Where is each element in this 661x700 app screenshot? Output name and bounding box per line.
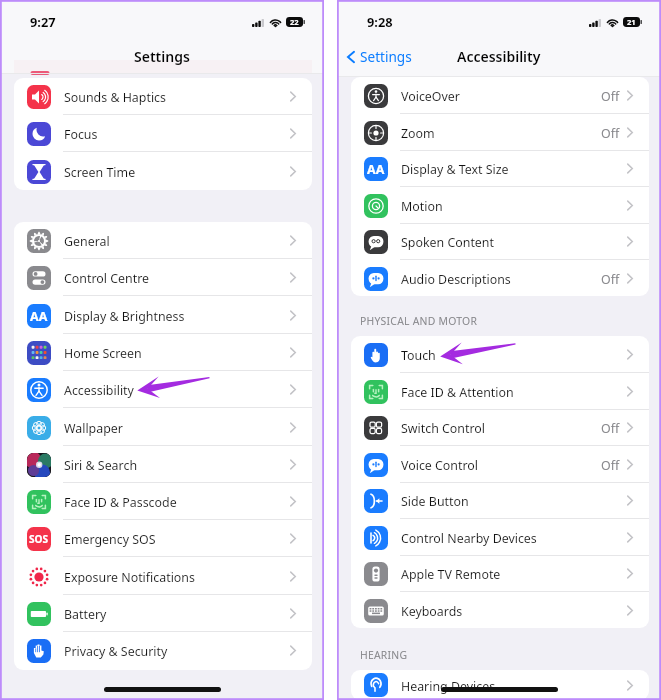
staticText: Focus (64, 126, 98, 143)
button[interactable]: General (14, 222, 312, 259)
staticText: Siri & Search (64, 457, 138, 474)
staticText: VoiceOver (401, 88, 460, 105)
staticText: Home Screen (64, 345, 142, 362)
staticText: Battery (64, 606, 107, 623)
button[interactable]: Sounds & Haptics (14, 78, 312, 115)
other: Back (347, 50, 355, 64)
staticText: Switch Control (401, 420, 486, 437)
button[interactable]: Hearing Devices (351, 670, 649, 700)
staticText: HEARING (360, 648, 408, 662)
staticText: PHYSICAL AND MOTOR (360, 314, 478, 328)
staticText: Side Button (401, 493, 469, 510)
staticText: 9:27 (30, 13, 56, 30)
button[interactable]: Zoom (351, 114, 649, 151)
staticText: Off (601, 271, 620, 288)
button[interactable]: Face ID & Attention (351, 373, 649, 410)
button[interactable]: Switch Control (351, 409, 649, 446)
staticText: Keyboards (401, 603, 463, 620)
button[interactable]: Siri & Search (14, 446, 312, 483)
button[interactable]: Side Button (351, 482, 649, 519)
staticText: Off (601, 457, 620, 474)
staticText: Settings (134, 47, 190, 66)
button[interactable]: Motion (351, 187, 649, 224)
staticText: Touch (401, 347, 436, 364)
staticText: Off (601, 88, 620, 105)
staticText: Wallpaper (64, 420, 123, 437)
staticText: Control Centre (64, 270, 150, 287)
staticText: Face ID & Attention (401, 384, 514, 401)
button[interactable]: AA (351, 150, 649, 187)
button[interactable]: VoiceOver (351, 77, 649, 114)
staticText: 21 (627, 17, 636, 27)
staticText: Apple TV Remote (401, 566, 501, 583)
staticText: Motion (401, 198, 443, 215)
button[interactable]: Focus (14, 115, 312, 152)
staticText: Face ID & Passcode (64, 494, 177, 511)
staticText: Screen Time (64, 164, 136, 181)
staticText: Display & Text Size (401, 161, 509, 178)
staticText: Voice Control (401, 457, 479, 474)
staticText: Privacy & Security (64, 643, 168, 660)
button[interactable]: Privacy & Security (14, 632, 312, 669)
staticText: Accessibility (64, 382, 134, 399)
staticText: Audio Descriptions (401, 271, 511, 288)
staticText: Off (601, 420, 620, 437)
staticText: 9:28 (367, 13, 393, 30)
staticText: AA (367, 161, 385, 178)
staticText: Display & Brightness (64, 308, 185, 325)
staticText: Settings (360, 47, 412, 66)
button[interactable]: Exposure Notifications (14, 558, 312, 595)
staticText: Hearing Devices (401, 678, 496, 695)
button[interactable]: Screen Time (14, 153, 312, 190)
staticText: Exposure Notifications (64, 569, 195, 586)
staticText: Emergency SOS (64, 531, 156, 548)
staticText: General (64, 233, 110, 250)
staticText: Spoken Content (401, 234, 494, 251)
staticText: AA (30, 308, 48, 325)
staticText: 22 (290, 17, 299, 27)
button[interactable]: Spoken Content (351, 223, 649, 260)
button[interactable]: Accessibility (14, 371, 312, 408)
button[interactable]: Battery (14, 595, 312, 632)
staticText: Accessibility (457, 47, 541, 66)
button[interactable]: Voice Control (351, 446, 649, 483)
button[interactable]: Apple TV Remote (351, 555, 649, 592)
button[interactable]: Touch (351, 336, 649, 373)
button[interactable]: Keyboards (351, 592, 649, 628)
button[interactable]: Wallpaper (14, 409, 312, 446)
button[interactable]: Back (347, 47, 412, 66)
staticText: Sounds & Haptics (64, 89, 166, 106)
button[interactable]: Home Screen (14, 334, 312, 371)
button[interactable]: Control Nearby Devices (351, 519, 649, 556)
button[interactable]: Face ID & Passcode (14, 483, 312, 520)
staticText: SOS (29, 532, 49, 546)
staticText: Off (601, 125, 620, 142)
button[interactable]: Audio Descriptions (351, 260, 649, 296)
staticText: Zoom (401, 125, 435, 142)
button[interactable]: SOS (14, 520, 312, 557)
staticText: Control Nearby Devices (401, 530, 537, 547)
button[interactable]: Control Centre (14, 259, 312, 296)
button[interactable]: AA (14, 297, 312, 334)
